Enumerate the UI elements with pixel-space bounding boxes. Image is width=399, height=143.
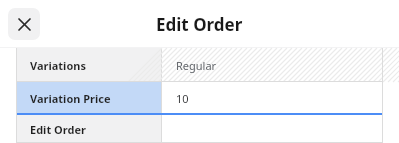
button[interactable]: Variation Price <box>16 82 383 115</box>
staticText: 10 <box>176 91 189 106</box>
staticText: Edit Order <box>156 13 243 36</box>
button[interactable]: Close <box>8 8 40 40</box>
staticText: Variation Price <box>30 91 111 106</box>
staticText: Edit Order <box>30 122 86 137</box>
button[interactable]: Edit Order <box>16 115 383 143</box>
button[interactable]: Variations <box>16 48 383 82</box>
staticText: Variations <box>30 58 86 73</box>
staticText: Regular <box>176 58 217 73</box>
